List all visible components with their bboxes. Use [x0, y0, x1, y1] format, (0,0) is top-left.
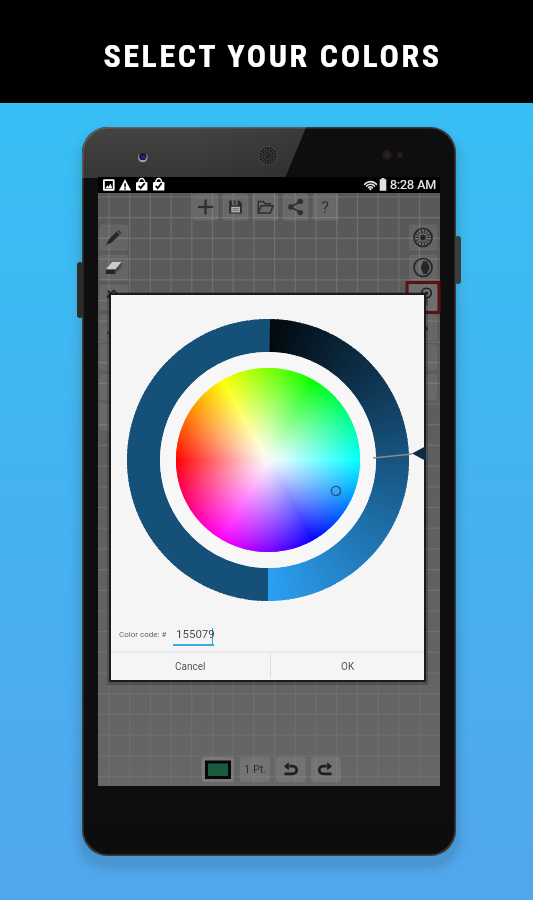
button[interactable]: Help [313, 194, 338, 220]
staticText: SELECT YOUR COLORS [103, 37, 442, 75]
staticText: Color code: # [119, 630, 167, 639]
staticText: 8:28 AM [390, 177, 437, 192]
button[interactable]: 155079 [176, 627, 215, 640]
staticText: 1 Pt. [244, 763, 267, 776]
button[interactable]: 1 Pt. [240, 757, 270, 782]
staticText: Cancel [175, 661, 206, 673]
button[interactable]: OK [271, 654, 424, 680]
staticText: 155079 [176, 627, 215, 640]
button[interactable]: SELECT YOUR COLORS [0, 0, 533, 103]
button[interactable]: Color code: # [119, 630, 167, 639]
button[interactable]: Cancel [111, 654, 270, 680]
staticText: OK [341, 661, 355, 673]
staticText: ? [321, 197, 330, 217]
button[interactable]: 8:28 AM [390, 177, 437, 192]
